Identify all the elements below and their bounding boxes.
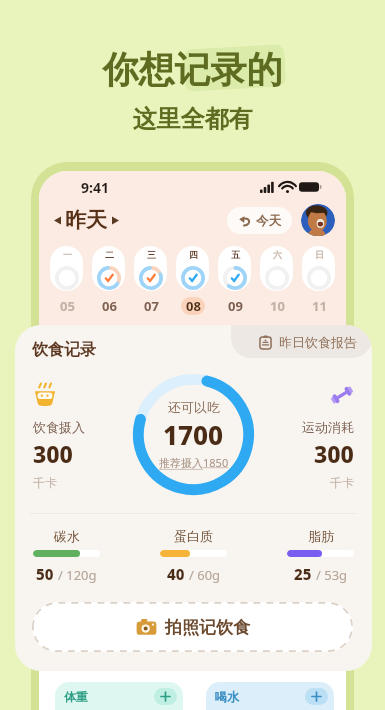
staticText: 饮食记录 [32, 340, 96, 360]
staticText: 昨天 [65, 207, 107, 233]
staticText: 三 [147, 249, 156, 260]
staticText: / 53g [316, 566, 348, 584]
button[interactable]: 三 [134, 246, 167, 291]
staticText: 09 [228, 297, 243, 315]
button[interactable]: 喝水 [215, 682, 328, 710]
staticText: 昨日饮食报告 [279, 334, 357, 350]
staticText: 今天 [256, 213, 281, 229]
staticText: 推荐摄入1850 [159, 455, 229, 470]
button[interactable]: 一 [50, 246, 83, 291]
staticText: 体重 [64, 689, 88, 704]
button[interactable]: 日 [302, 246, 335, 291]
staticText: 饮食摄入 [33, 419, 85, 435]
staticText: 40 [167, 564, 185, 584]
staticText: 脂肪 [308, 528, 334, 544]
button[interactable]: Profile [301, 204, 335, 236]
button[interactable]: 拍照记饮食 [32, 602, 353, 652]
staticText: 300 [33, 438, 73, 469]
button[interactable]: 二 [92, 246, 125, 291]
staticText: 四 [189, 249, 198, 260]
staticText: 9:41 [81, 178, 109, 197]
staticText: 千卡 [330, 475, 354, 490]
button[interactable]: 昨日饮食报告 [231, 325, 372, 358]
button[interactable]: 昨天 [54, 207, 119, 233]
staticText: 这里全都有 [0, 104, 385, 134]
button[interactable]: 体重 [64, 682, 177, 710]
staticText: 300 [314, 438, 354, 469]
staticText: 一 [63, 249, 72, 260]
staticText: 你想记录的 [0, 47, 385, 92]
staticText: 08 [186, 297, 201, 315]
staticText: 1700 [163, 417, 224, 452]
button[interactable]: 六 [260, 246, 293, 291]
staticText: 五 [231, 249, 240, 260]
staticText: 06 [102, 297, 117, 315]
staticText: 千卡 [33, 475, 57, 490]
button[interactable]: 今天 [239, 207, 281, 234]
staticText: 日 [315, 249, 324, 260]
staticText: 碳水 [54, 528, 80, 544]
staticText: 拍照记饮食 [165, 617, 250, 638]
staticText: 50 [36, 564, 54, 584]
staticText: / 60g [189, 566, 221, 584]
staticText: 11 [312, 297, 327, 315]
staticText: 还可以吃 [168, 399, 220, 415]
staticText: 07 [144, 297, 159, 315]
staticText: 运动消耗 [302, 419, 354, 435]
staticText: 25 [294, 564, 312, 584]
staticText: 10 [270, 297, 285, 315]
button[interactable]: 五 [218, 246, 251, 291]
staticText: / 120g [58, 566, 97, 584]
button[interactable]: 四 [176, 246, 209, 291]
staticText: 喝水 [215, 689, 239, 704]
staticText: 蛋白质 [174, 528, 213, 544]
staticText: 二 [105, 249, 114, 260]
staticText: 六 [273, 249, 282, 260]
staticText: 05 [60, 297, 75, 315]
